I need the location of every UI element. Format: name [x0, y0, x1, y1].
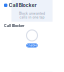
button[interactable]: Enable — [26, 43, 38, 47]
staticText: Enable — [26, 43, 37, 47]
staticText: Block unwanted — [19, 12, 45, 15]
staticText: Call Blocker — [4, 24, 24, 28]
staticText: Call Blocker — [9, 2, 37, 8]
staticText: calls in one tap — [19, 15, 44, 19]
